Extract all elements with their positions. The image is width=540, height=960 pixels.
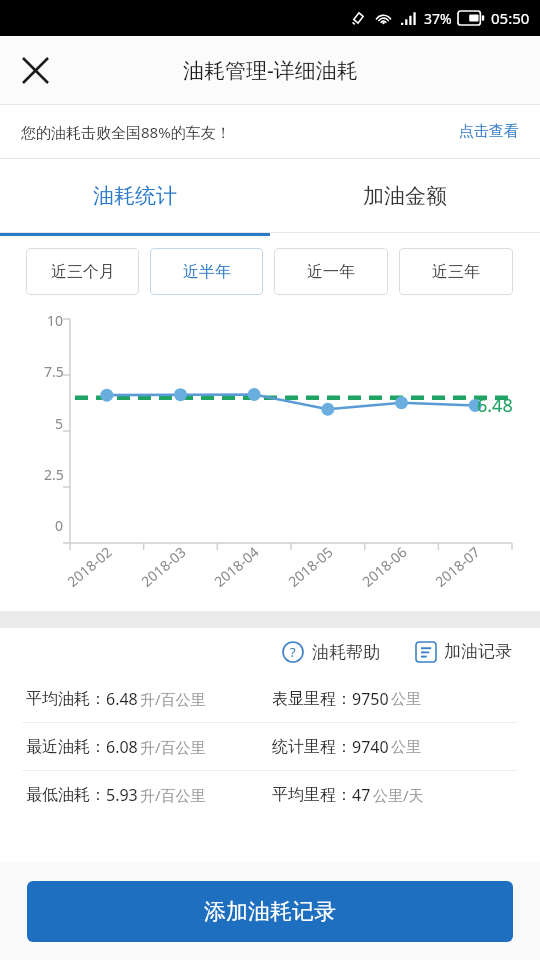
staticText: 点击查看: [459, 122, 519, 141]
staticText: 2018-02: [63, 542, 116, 591]
button[interactable]: 近三年: [399, 248, 513, 295]
staticText: 公里: [391, 738, 421, 757]
staticText: 统计里程：: [272, 737, 352, 757]
staticText: 最近油耗：: [26, 737, 106, 757]
staticText: 5.93: [106, 784, 138, 806]
staticText: 平均里程：: [272, 785, 352, 805]
staticText: 平均油耗：: [26, 689, 106, 709]
button[interactable]: ?: [278, 637, 384, 667]
button[interactable]: 近一年: [274, 248, 388, 295]
staticText: 47: [352, 784, 371, 806]
button[interactable]: 近半年: [150, 248, 263, 295]
staticText: 近三年: [432, 262, 480, 282]
staticText: 油耗帮助: [312, 642, 380, 663]
staticText: 油耗统计: [93, 183, 177, 209]
staticText: 5: [55, 414, 64, 433]
staticText: 6.08: [106, 736, 138, 758]
button[interactable]: 您的油耗击败全国88%的车友！: [0, 105, 540, 158]
button[interactable]: 加油金额: [270, 159, 540, 232]
button[interactable]: Close: [12, 47, 58, 93]
staticText: 6.48: [477, 393, 513, 418]
button[interactable]: 添加油耗记录: [27, 881, 513, 942]
staticText: ?: [290, 643, 296, 661]
staticText: 05:50: [491, 8, 530, 28]
staticText: 表显里程：: [272, 689, 352, 709]
staticText: 升/百公里: [140, 737, 206, 757]
staticText: 您的油耗击败全国88%的车友！: [21, 122, 231, 142]
staticText: 升/百公里: [140, 689, 206, 709]
staticText: 近三个月: [51, 262, 115, 282]
button[interactable]: 加油记录: [412, 637, 516, 666]
staticText: 2018-07: [431, 542, 484, 591]
staticText: 9740: [352, 736, 389, 758]
staticText: 9750: [352, 688, 389, 710]
staticText: 2018-05: [284, 542, 337, 591]
staticText: 加油记录: [444, 641, 512, 662]
staticText: 37%: [424, 9, 452, 28]
button[interactable]: 油耗统计: [0, 159, 270, 232]
staticText: 公里: [391, 690, 421, 709]
staticText: 最低油耗：: [26, 785, 106, 805]
staticText: 公里/天: [373, 785, 424, 805]
staticText: 近一年: [307, 262, 355, 282]
staticText: 10: [47, 311, 64, 330]
staticText: 2018-04: [210, 542, 263, 591]
staticText: 0: [55, 516, 64, 535]
button[interactable]: 近三个月: [26, 248, 139, 295]
staticText: 加油金额: [363, 183, 447, 209]
staticText: 2018-06: [358, 542, 411, 591]
staticText: 7.5: [44, 362, 64, 381]
staticText: 升/百公里: [140, 785, 206, 805]
staticText: 2018-03: [137, 542, 190, 591]
staticText: 近半年: [183, 262, 231, 282]
staticText: 2.5: [44, 465, 64, 484]
staticText: 6.48: [106, 688, 138, 710]
staticText: 油耗管理-详细油耗: [183, 56, 358, 85]
staticText: 添加油耗记录: [204, 898, 336, 926]
